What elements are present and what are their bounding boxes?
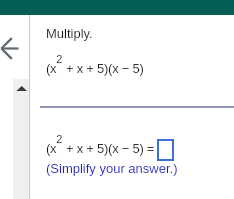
staticText: Multiply.: [46, 26, 93, 41]
staticText: (x2 + x + 5)(x − 5): [46, 53, 144, 76]
button[interactable]: [157, 139, 174, 161]
staticText: (x2 + x + 5)(x − 5) =: [46, 133, 155, 156]
button[interactable]: Back: [0, 35, 24, 61]
staticText: (Simplify your answer.): [46, 161, 178, 176]
button[interactable]: Scroll up: [13, 79, 29, 97]
